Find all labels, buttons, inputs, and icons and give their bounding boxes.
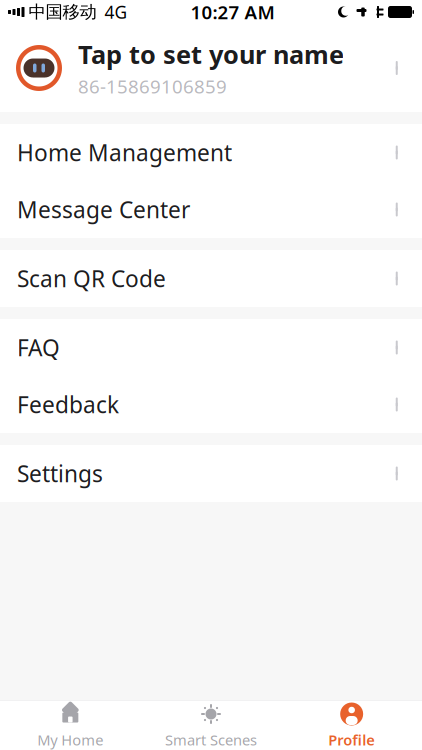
staticText: Scan QR Code [17,263,166,293]
button[interactable]: Tap to set your name [0,24,422,112]
staticText: 86-15869106859 [78,74,227,99]
button[interactable]: Profile [281,700,422,750]
button[interactable]: Scan QR Code [0,250,422,307]
staticText: 中国移动 [28,1,96,23]
button[interactable]: Feedback [0,376,422,433]
staticText: 4G [104,0,127,23]
button[interactable]: Home Management [0,124,422,181]
button[interactable]: FAQ [0,319,422,376]
staticText: Profile [328,730,375,749]
staticText: FAQ [17,332,60,362]
button[interactable]: My Home [0,700,141,750]
staticText: Settings [17,458,103,488]
staticText: 10:27 AM [190,0,274,24]
staticText: Tap to set your name [78,37,344,71]
staticText: Smart Scenes [165,730,257,749]
button[interactable]: Message Center [0,181,422,238]
staticText: Home Management [17,137,232,167]
button[interactable]: Smart Scenes [141,700,281,750]
staticText: My Home [37,730,103,749]
staticText: Feedback [17,389,119,419]
button[interactable]: Settings [0,445,422,502]
staticText: Message Center [17,194,190,224]
